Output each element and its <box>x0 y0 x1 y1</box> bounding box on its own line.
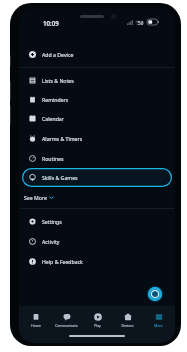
button[interactable]: Reminders <box>19 90 175 109</box>
staticText: Reminders <box>42 96 69 103</box>
staticText: Communicate <box>55 323 78 328</box>
button[interactable]: Activity <box>19 232 175 251</box>
staticText: Calendar <box>42 115 64 122</box>
button[interactable]: See More <box>19 189 175 205</box>
staticText: Settings <box>42 218 62 225</box>
staticText: Devices <box>121 323 134 328</box>
button[interactable]: Home <box>21 313 50 328</box>
button[interactable]: Alarms & Timers <box>19 129 175 148</box>
staticText: Skills & Games <box>42 174 78 181</box>
staticText: Lists & Notes <box>42 77 74 84</box>
staticText: Add a Device <box>42 51 74 58</box>
staticText: Routines <box>42 155 64 162</box>
staticText: Help & Feedback <box>42 258 83 265</box>
button[interactable]: Devices <box>113 313 142 328</box>
button[interactable]: Help & Feedback <box>19 252 175 271</box>
staticText: Alarms & Timers <box>42 135 83 142</box>
button[interactable]: Play <box>83 313 112 328</box>
staticText: Play <box>94 323 101 328</box>
staticText: 50 <box>138 20 144 26</box>
button[interactable]: Calendar <box>19 109 175 128</box>
button[interactable]: Add a Device <box>19 45 175 64</box>
staticText: 10:09 <box>43 19 59 27</box>
staticText: Activity <box>42 238 60 245</box>
button[interactable]: Lists & Notes <box>19 71 175 90</box>
staticText: See More <box>24 194 47 201</box>
staticText: Home <box>31 323 41 328</box>
button[interactable]: More <box>144 313 173 328</box>
button[interactable]: Settings <box>19 212 175 231</box>
button[interactable]: Skills & Games <box>22 168 172 187</box>
button[interactable]: Alexa voice assistant <box>146 285 164 303</box>
button[interactable]: Routines <box>19 149 175 168</box>
staticText: More <box>154 323 163 328</box>
button[interactable]: Communicate <box>52 313 81 328</box>
